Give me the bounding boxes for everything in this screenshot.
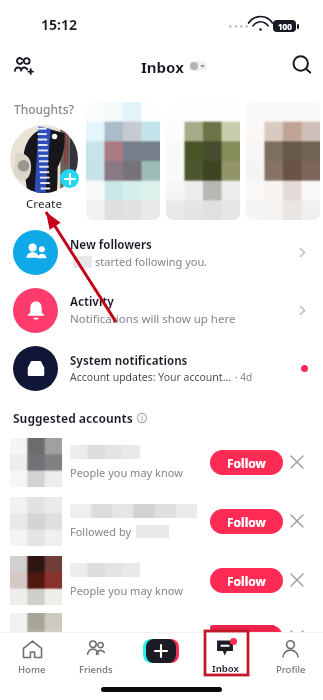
staticText: Account updates: Your account… bbox=[70, 370, 231, 384]
staticText: Follow bbox=[227, 573, 266, 589]
button[interactable]: Story bbox=[166, 102, 240, 220]
staticText: People you may know bbox=[70, 465, 183, 480]
button[interactable]: Dismiss bbox=[283, 507, 311, 535]
button[interactable]: New followers bbox=[0, 230, 323, 275]
staticText: New followers bbox=[70, 237, 152, 253]
button[interactable]: Inbox bbox=[141, 57, 207, 75]
staticText: Activity bbox=[70, 294, 114, 310]
button[interactable]: Follow bbox=[210, 450, 283, 475]
button[interactable]: Search bbox=[283, 47, 321, 85]
button[interactable]: Activity bbox=[0, 288, 323, 333]
button[interactable]: System notifications bbox=[0, 346, 323, 391]
button[interactable]: People you may know bbox=[0, 555, 323, 605]
staticText: Profile bbox=[276, 663, 306, 676]
button[interactable]: Follow bbox=[210, 568, 283, 593]
button[interactable]: Story bbox=[246, 102, 320, 220]
button[interactable]: Thoughts? bbox=[10, 95, 78, 212]
button[interactable]: A.V… bbox=[0, 612, 323, 662]
staticText: 100 bbox=[278, 21, 292, 32]
staticText: Home bbox=[18, 663, 46, 676]
button[interactable]: Inbox bbox=[193, 633, 258, 675]
button[interactable]: People you may know bbox=[0, 437, 323, 487]
staticText: System notifications bbox=[70, 353, 188, 369]
button[interactable]: Friends bbox=[64, 633, 128, 676]
staticText: Inbox bbox=[212, 662, 240, 675]
button[interactable]: Story bbox=[86, 102, 160, 220]
button[interactable]: Home bbox=[0, 633, 64, 676]
staticText: Followed by bbox=[70, 524, 132, 539]
button[interactable]: Profile bbox=[258, 633, 323, 676]
staticText: started following you. bbox=[95, 254, 208, 269]
staticText: Follow bbox=[227, 455, 266, 471]
staticText: Create bbox=[26, 196, 63, 212]
button[interactable]: Dismiss bbox=[283, 566, 311, 594]
staticText: · 4d bbox=[235, 370, 253, 384]
button[interactable]: Dismiss bbox=[283, 448, 311, 476]
button[interactable]: Create bbox=[143, 639, 179, 663]
staticText: Thoughts? bbox=[14, 101, 74, 117]
staticText: Inbox bbox=[141, 57, 184, 75]
staticText: Suggested accounts bbox=[13, 410, 133, 426]
button[interactable]: Add friends bbox=[5, 47, 43, 85]
staticText: A.V… bbox=[70, 629, 98, 645]
button[interactable]: Info bbox=[137, 413, 147, 423]
staticText: People you may know bbox=[70, 583, 183, 598]
staticText: Notifications will show up here bbox=[70, 311, 236, 327]
button[interactable]: Dismiss bbox=[283, 623, 311, 651]
button[interactable]: Follow bbox=[210, 625, 283, 650]
staticText: Follow bbox=[227, 514, 266, 530]
staticText: Follow bbox=[227, 630, 266, 646]
staticText: Friends bbox=[79, 663, 113, 676]
button[interactable]: Follow bbox=[210, 509, 283, 534]
button[interactable]: Followed by bbox=[0, 496, 323, 546]
staticText: 15:12 bbox=[41, 15, 77, 34]
